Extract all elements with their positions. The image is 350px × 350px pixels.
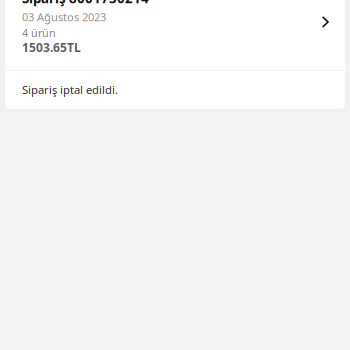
button[interactable]: Sipariş 8001730214 xyxy=(5,0,345,70)
staticText: 1503.65TL xyxy=(22,39,81,55)
staticText: 4 ürün xyxy=(22,26,56,40)
staticText: Sipariş iptal edildi. xyxy=(22,82,118,97)
staticText: 03 Ağustos 2023 xyxy=(22,10,106,24)
staticText: Sipariş 8001730214 xyxy=(22,0,149,7)
